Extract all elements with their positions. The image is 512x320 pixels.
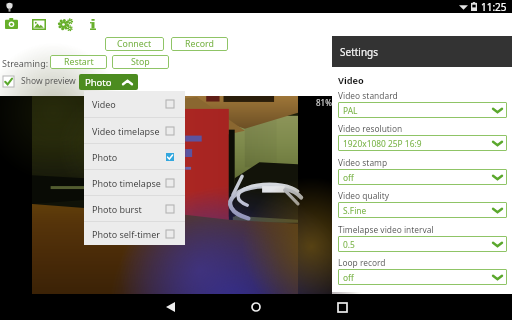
staticText: Video standard [338, 90, 398, 101]
button[interactable]: Record [171, 37, 228, 51]
staticText: Connect [117, 38, 152, 50]
staticText: Stop [131, 56, 150, 68]
staticText: Restart [64, 56, 94, 68]
staticText: Photo [92, 151, 118, 163]
button[interactable]: Connect [105, 37, 164, 51]
button[interactable]: PAL [338, 102, 507, 118]
button[interactable]: Info [84, 16, 103, 34]
button[interactable]: Restart [50, 55, 107, 69]
button[interactable]: Photo burst [84, 196, 185, 221]
button[interactable]: Show preview [1, 73, 17, 89]
staticText: PAL [343, 105, 358, 116]
staticText: 0.5 [343, 239, 355, 250]
button[interactable]: Stop [112, 55, 169, 69]
button[interactable]: Gallery [29, 16, 48, 34]
staticText: Photo timelapse [92, 177, 161, 189]
button[interactable]: Camera [2, 16, 21, 34]
button[interactable]: Video timelapse [84, 118, 185, 143]
staticText: Photo [85, 76, 112, 89]
button[interactable]: Photo [84, 144, 185, 169]
button[interactable]: 0.5 [338, 236, 507, 252]
staticText: Timelapse video interval [338, 224, 434, 235]
staticText: 81% [316, 97, 332, 108]
button[interactable]: Home [245, 296, 267, 318]
button[interactable]: Photo [79, 74, 138, 90]
staticText: Video resolution [338, 123, 403, 134]
staticText: Show preview [21, 75, 76, 87]
button[interactable]: S.Fine [338, 202, 507, 218]
button[interactable]: Video [84, 91, 185, 117]
button[interactable]: Photo self-timer [84, 222, 185, 245]
staticText: 11:25 [481, 0, 507, 13]
staticText: Video [92, 98, 116, 110]
button[interactable]: 1920x1080 25P 16:9 [338, 135, 507, 151]
button[interactable]: Photo timelapse [84, 170, 185, 195]
button[interactable]: off [338, 169, 507, 185]
staticText: Video quality [338, 190, 390, 201]
staticText: Video stamp [338, 157, 388, 168]
staticText: S.Fine [343, 205, 367, 216]
staticText: Streaming: [2, 57, 49, 69]
staticText: Record [185, 38, 214, 50]
staticText: off [343, 272, 354, 283]
button[interactable]: Back [159, 296, 181, 318]
staticText: off [343, 172, 354, 183]
staticText: 1920x1080 25P 16:9 [343, 138, 422, 149]
button[interactable]: Recents [331, 296, 353, 318]
staticText: Video timelapse [92, 125, 160, 137]
staticText: Loop record [338, 257, 386, 268]
button[interactable]: off [338, 269, 507, 285]
staticText: Photo burst [92, 203, 142, 215]
staticText: Settings [340, 45, 379, 59]
staticText: Photo self-timer [92, 228, 160, 240]
button[interactable]: Settings [57, 16, 76, 34]
staticText: Video [338, 74, 364, 87]
